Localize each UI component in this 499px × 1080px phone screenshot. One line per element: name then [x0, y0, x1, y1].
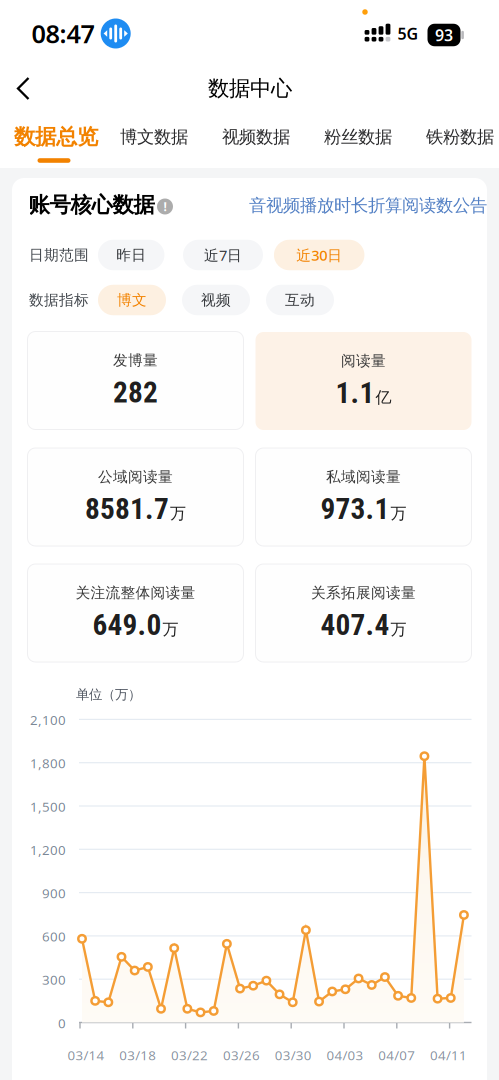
- staticText: 博文: [117, 291, 147, 309]
- staticText: 03/26: [223, 1046, 260, 1064]
- staticText: 300: [42, 971, 66, 988]
- button[interactable]: 互动: [266, 285, 334, 315]
- staticText: 铁粉数据: [426, 126, 494, 148]
- staticText: 阅读量: [341, 352, 386, 370]
- staticText: 账号核心数据: [28, 192, 154, 218]
- staticText: 03/22: [171, 1046, 208, 1064]
- button[interactable]: 粉丝数据: [308, 113, 408, 161]
- button[interactable]: 视频: [182, 285, 250, 315]
- button[interactable]: 音视频播放时长折算阅读数公告: [249, 195, 487, 216]
- staticText: 万: [390, 619, 406, 639]
- button[interactable]: 近7日: [183, 240, 263, 270]
- staticText: 1.1: [335, 376, 374, 410]
- staticText: 关系拓展阅读量: [311, 584, 416, 602]
- button[interactable]: 返回: [0, 0, 499, 120]
- staticText: 数据总览: [14, 124, 98, 150]
- staticText: 900: [42, 884, 66, 902]
- staticText: 2,100: [30, 711, 66, 729]
- staticText: 粉丝数据: [324, 126, 392, 148]
- staticText: 03/30: [275, 1046, 312, 1064]
- staticText: 万: [390, 503, 406, 523]
- staticText: 亿: [375, 387, 391, 407]
- staticText: 0: [58, 1014, 66, 1032]
- staticText: 昨日: [116, 246, 146, 264]
- button[interactable]: 昨日: [98, 240, 164, 270]
- staticText: 互动: [285, 291, 315, 309]
- staticText: 关注流整体阅读量: [75, 584, 195, 602]
- button[interactable]: 博文: [98, 285, 166, 315]
- staticText: 1,500: [30, 798, 66, 815]
- staticText: 万: [170, 503, 186, 523]
- staticText: 数据指标: [29, 291, 89, 309]
- staticText: 音视频播放时长折算阅读数公告: [249, 195, 487, 216]
- staticText: 近30日: [296, 245, 342, 265]
- staticText: 93: [435, 24, 453, 46]
- staticText: 单位（万）: [76, 686, 141, 703]
- button[interactable]: 铁粉数据: [410, 113, 499, 161]
- staticText: 近7日: [204, 245, 242, 265]
- staticText: 649.0: [92, 608, 161, 642]
- staticText: 407.4: [320, 608, 389, 642]
- staticText: 08:47: [31, 17, 94, 50]
- staticText: 公域阅读量: [98, 468, 173, 486]
- staticText: 视频数据: [222, 126, 290, 148]
- staticText: 发博量: [113, 351, 158, 369]
- staticText: 日期范围: [29, 246, 89, 264]
- staticText: 03/18: [119, 1046, 156, 1064]
- staticText: 数据中心: [208, 75, 292, 102]
- button[interactable]: 数据总览: [1, 118, 109, 166]
- button[interactable]: 博文数据: [104, 113, 204, 161]
- staticText: 私域阅读量: [326, 468, 401, 486]
- button[interactable]: 近30日: [274, 240, 364, 270]
- staticText: 8581.7: [85, 492, 169, 526]
- staticText: 973.1: [320, 492, 389, 526]
- button[interactable]: 说明: [155, 196, 175, 216]
- staticText: 04/11: [430, 1046, 467, 1064]
- staticText: 282: [113, 375, 158, 410]
- staticText: 03/14: [67, 1046, 104, 1064]
- button[interactable]: 视频数据: [206, 113, 306, 161]
- staticText: 视频: [201, 291, 231, 309]
- staticText: 04/03: [326, 1046, 363, 1064]
- staticText: 5G: [397, 23, 418, 44]
- staticText: 04/07: [378, 1046, 415, 1064]
- staticText: !: [163, 198, 166, 214]
- staticText: 1,800: [30, 754, 66, 772]
- staticText: 万: [162, 619, 178, 639]
- staticText: 1,200: [30, 841, 66, 859]
- staticText: 600: [42, 927, 66, 945]
- staticText: 博文数据: [120, 126, 188, 148]
